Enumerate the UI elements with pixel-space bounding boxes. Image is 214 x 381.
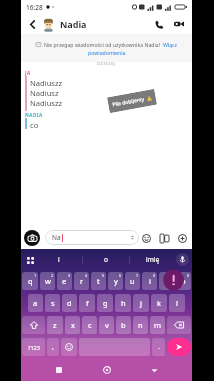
button[interactable]: i [36,249,82,270]
button[interactable]: p [176,272,191,290]
staticText: , [52,342,54,352]
staticText: Nadiusz [30,88,59,98]
button[interactable]: f [79,294,95,312]
button[interactable]: Shift [22,316,45,334]
button[interactable]: Back [25,17,39,31]
staticText: 0 [187,273,190,278]
button[interactable]: h [115,294,131,312]
staticText: x [71,320,75,330]
button[interactable]: l [169,294,185,312]
staticText: Nadiuszz [30,78,63,88]
button[interactable]: r [74,272,89,290]
staticText: o [104,255,108,264]
button[interactable]: Voice input [176,253,189,266]
staticText: 6 [119,273,122,278]
button[interactable]: n [133,316,148,334]
staticText: d [67,298,72,308]
staticText: m [154,320,162,330]
staticText: l [176,298,178,308]
staticText: t [97,276,100,286]
staticText: imię [146,255,160,264]
staticText: o [164,276,169,286]
staticText: 3 [68,273,71,278]
button[interactable]: Keyboard menu [24,254,36,266]
button[interactable]: Na [45,230,139,245]
staticText: n [138,320,143,330]
staticText: 2 [51,273,54,278]
staticText: NADIA [25,112,43,118]
button[interactable]: Piła dobijemy [107,89,157,113]
button[interactable]: k [151,294,167,312]
button[interactable]: g [97,294,113,312]
button[interactable]: o [83,249,129,270]
staticText: k [157,298,162,308]
button[interactable]: Emoji [61,338,77,356]
button[interactable]: Send [167,338,191,356]
staticText: DZISIAJ [21,61,192,67]
staticText: c [88,320,92,330]
staticText: i [149,276,151,286]
button[interactable]: q [22,272,38,290]
button[interactable]: c [82,316,97,334]
staticText: f [86,298,89,308]
staticText: h [121,298,126,308]
button[interactable]: e [57,272,72,290]
staticText: 4 [85,273,88,278]
button[interactable]: Emoji [140,232,152,244]
button[interactable]: w [40,272,55,290]
button[interactable]: Recent apps [50,361,68,379]
staticText: u [130,276,135,286]
staticText: 9 [170,273,173,278]
button[interactable]: i [142,272,157,290]
staticText: z [53,320,57,330]
staticText: Nie przegap wiadomości od użytkownika Na… [44,41,161,48]
button[interactable]: Nie przegap wiadomości od użytkownika Na… [21,34,192,62]
staticText: 8 [153,273,156,278]
button[interactable]: Camera [24,230,40,246]
button[interactable]: More options [176,232,188,244]
staticText: JA [25,70,31,76]
staticText: y [114,276,118,286]
button[interactable]: b [116,316,131,334]
button[interactable]: a [28,294,43,312]
staticText: 16:28 [26,3,43,12]
button[interactable]: Call [152,17,166,31]
button[interactable]: u [125,272,140,290]
button[interactable]: o [159,272,174,290]
staticText: Nadiuszz [30,98,63,108]
staticText: a [33,298,38,308]
staticText: v [105,320,109,330]
button[interactable]: s [45,294,60,312]
button[interactable]: x [65,316,80,334]
button[interactable]: Home [98,361,116,379]
button[interactable]: z [47,316,63,334]
button[interactable]: m [150,316,165,334]
button[interactable]: , [47,338,59,356]
staticText: w [45,276,51,286]
button[interactable]: t [91,272,106,290]
button[interactable]: Stickers [158,232,170,244]
staticText: co [30,120,39,130]
staticText: 7 [136,273,139,278]
staticText: powiadomienia [88,49,126,56]
button[interactable]: imię [130,249,176,270]
staticText: r [80,276,84,286]
staticText: Włącz [163,41,178,48]
button[interactable]: . [152,338,165,356]
button[interactable]: j [133,294,149,312]
button[interactable]: v [99,316,114,334]
staticText: Nadia [60,18,87,30]
staticText: ?123 [28,344,40,351]
staticText: Na [52,233,61,242]
button[interactable]: Video call [172,17,186,31]
button[interactable]: y [108,272,123,290]
staticText: j [140,298,142,308]
staticText: Piła dobijemy [112,96,145,109]
staticText: p [181,276,186,286]
button[interactable]: ?123 [22,338,45,356]
button[interactable]: d [62,294,77,312]
button[interactable]: Backspace [167,316,191,334]
staticText: q [28,276,33,286]
button[interactable]: Space [79,338,150,356]
button[interactable]: Back [145,361,163,379]
